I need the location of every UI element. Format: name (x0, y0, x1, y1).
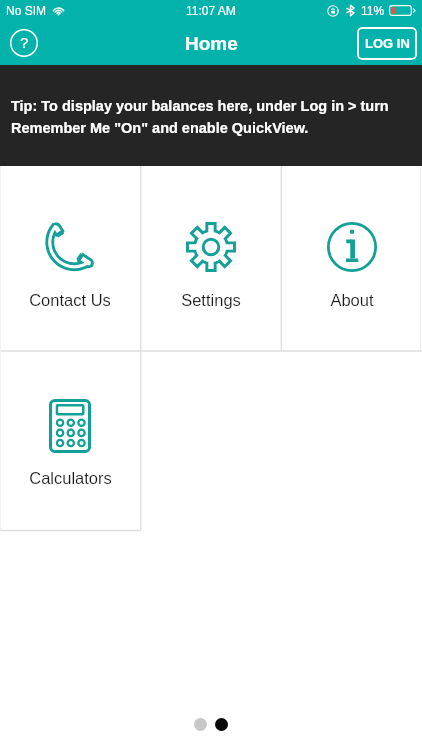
button[interactable]: About (281, 166, 422, 351)
staticText: Settings (181, 291, 241, 309)
staticText: LOG IN (365, 36, 410, 51)
staticText: 11% (361, 4, 385, 17)
staticText: No SIM (6, 4, 47, 17)
staticText: Calculators (29, 469, 112, 487)
staticText: ? (20, 34, 29, 51)
staticText: About (330, 291, 374, 309)
button[interactable]: Calculators (0, 351, 140, 531)
button[interactable]: LOG IN (357, 27, 417, 60)
button[interactable]: Help (7, 26, 41, 60)
staticText: Contact Us (29, 291, 111, 309)
staticText: Home (185, 33, 238, 54)
staticText: Tip: To display your balances here, unde… (11, 98, 408, 136)
staticText: 11:07 AM (186, 4, 236, 17)
button[interactable]: Settings (140, 166, 281, 351)
button[interactable]: Contact Us (0, 166, 140, 351)
